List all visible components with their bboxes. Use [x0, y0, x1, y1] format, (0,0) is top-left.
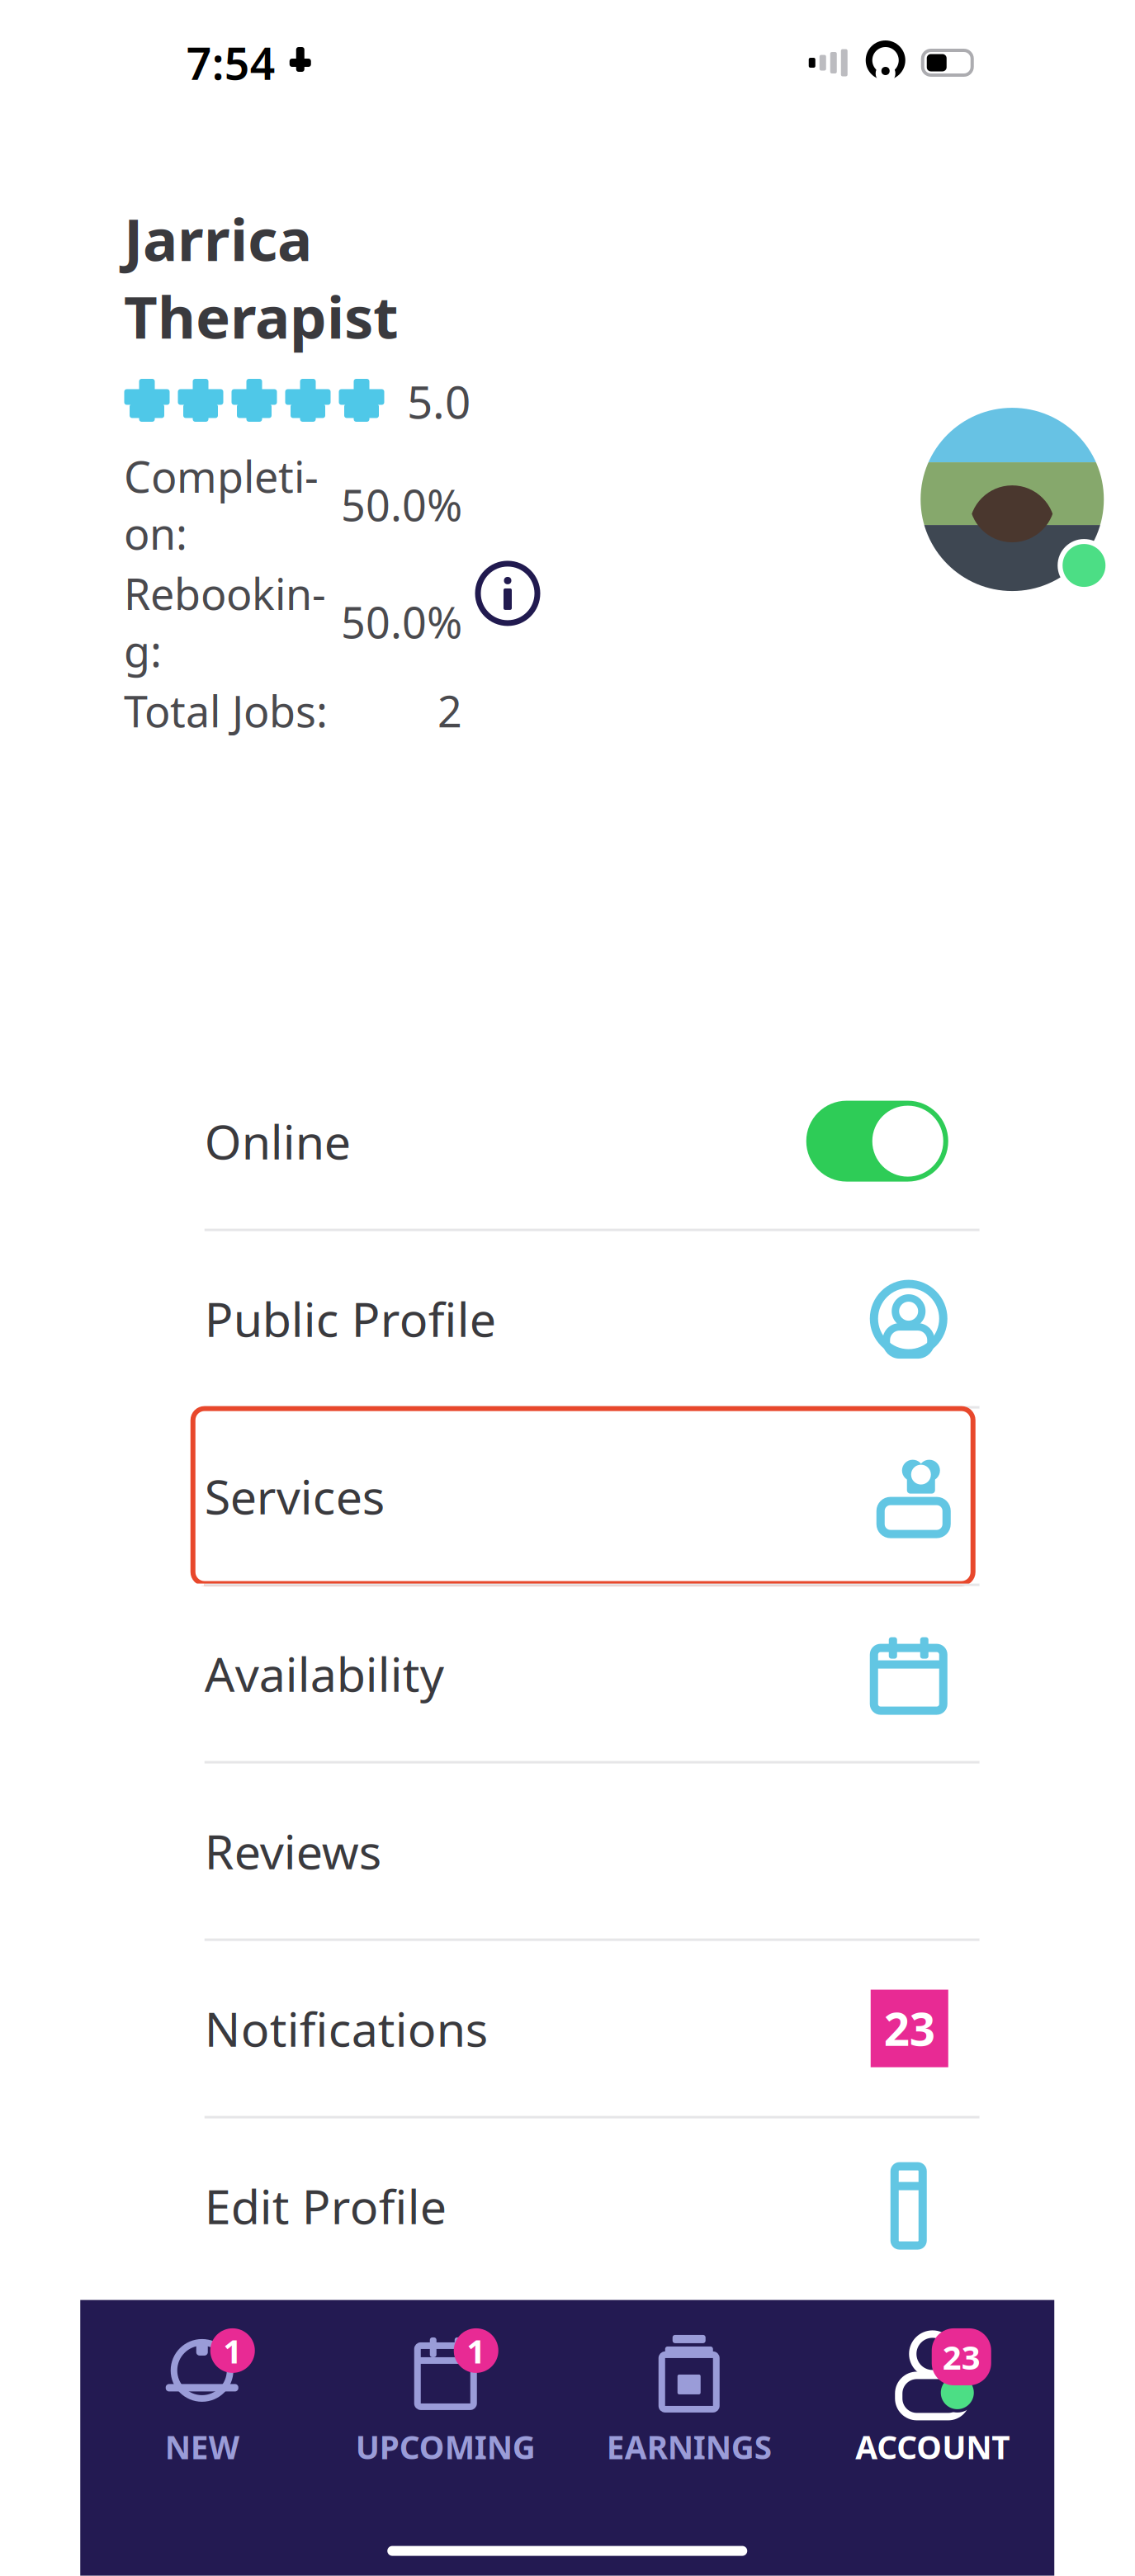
button[interactable]: Public Profile [81, 1231, 1054, 1406]
staticText: Total Jobs: [124, 682, 328, 739]
staticText: Rebooking: [124, 565, 326, 679]
button[interactable]: EARNINGS [567, 2321, 811, 2475]
button[interactable]: Availability [81, 1586, 1054, 1761]
staticText: 7:54 [186, 34, 276, 92]
staticText: Edit Profile [205, 2174, 446, 2237]
button[interactable]: 23 [811, 2321, 1054, 2475]
staticText: ACCOUNT [855, 2426, 1010, 2468]
staticText: 1 [223, 2329, 242, 2373]
staticText: Services [205, 1465, 384, 1527]
staticText: Availability [205, 1642, 444, 1705]
staticText: 23 [884, 1998, 935, 2058]
staticText: NEW [165, 2426, 239, 2468]
staticText: Reviews [205, 1820, 381, 1882]
button[interactable]: Edit Profile [81, 2118, 1054, 2293]
button[interactable]: 1 [80, 2321, 324, 2475]
staticText: UPCOMING [356, 2426, 536, 2468]
staticText: 23 [943, 2335, 980, 2379]
staticText: Jarrica Therapist [124, 200, 399, 355]
button[interactable]: Statistics information [462, 548, 553, 639]
staticText: 50.0% [341, 593, 462, 650]
staticText: Public Profile [205, 1287, 496, 1350]
staticText: 1 [467, 2329, 486, 2373]
staticText: Online [205, 1110, 351, 1173]
staticText: 2 [437, 682, 462, 739]
staticText: Notifications [205, 1997, 488, 2060]
staticText: EARNINGS [607, 2426, 772, 2468]
staticText: Completion: [124, 448, 319, 562]
staticText: 50.0% [341, 476, 462, 533]
button[interactable]: Reviews [81, 1763, 1054, 1938]
button[interactable]: Services [81, 1409, 1054, 1584]
button[interactable]: Notifications [81, 1941, 1054, 2116]
button[interactable]: Online [81, 1054, 1054, 1229]
staticText: 5.0 [407, 371, 471, 431]
button[interactable]: 1 [324, 2321, 567, 2475]
